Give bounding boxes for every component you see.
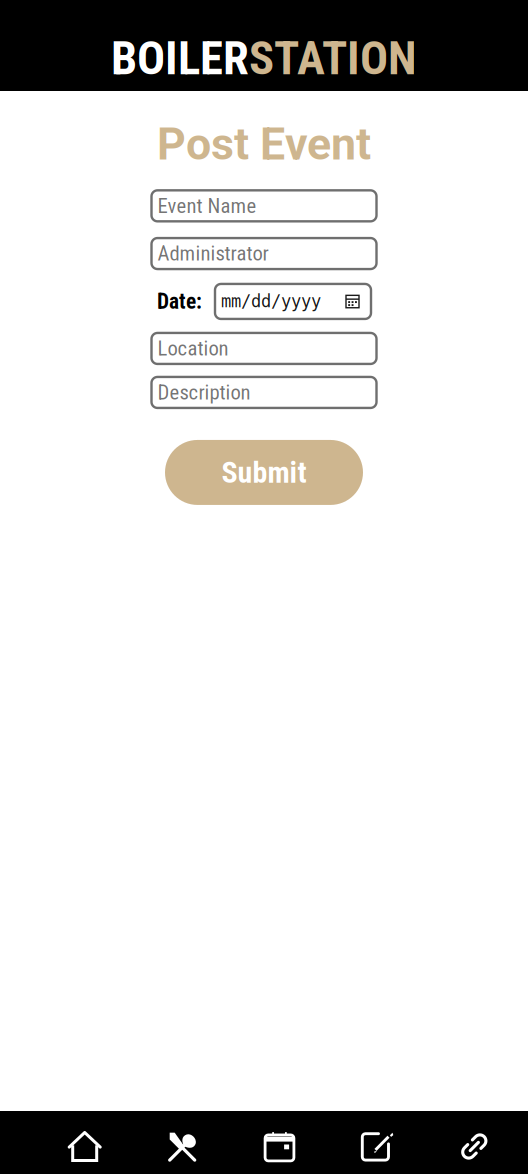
staticText: mm/dd/yyyy [221, 291, 321, 311]
staticText: Post Event [157, 118, 371, 170]
staticText: BOILER [111, 31, 249, 86]
button[interactable]: Dining [133, 1119, 231, 1174]
staticText: STATION [249, 31, 417, 86]
staticText: Administrator [157, 241, 268, 266]
button[interactable]: Submit [165, 440, 363, 505]
button[interactable]: Home [36, 1119, 133, 1174]
staticText: Location [157, 336, 228, 360]
button[interactable]: Events [231, 1119, 328, 1174]
staticText: Description [157, 380, 250, 404]
staticText: Event Name [157, 194, 256, 218]
button[interactable]: Links [426, 1119, 523, 1174]
staticText: Submit [221, 455, 306, 490]
staticText: Date: [157, 289, 202, 314]
button[interactable]: Post [328, 1119, 426, 1174]
